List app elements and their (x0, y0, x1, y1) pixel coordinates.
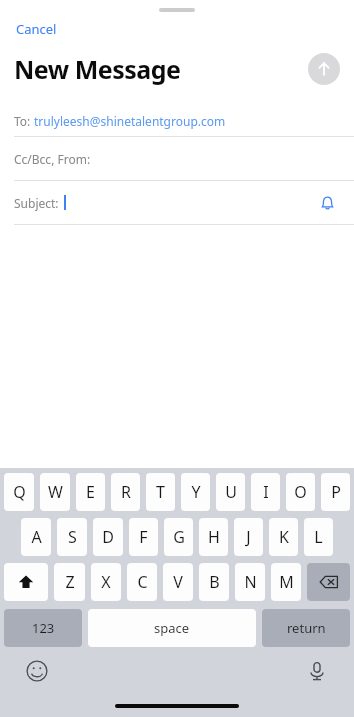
button[interactable]: R (111, 473, 140, 511)
staticText: G (173, 526, 185, 548)
button[interactable]: D (93, 518, 123, 556)
button[interactable]: Q (4, 473, 34, 511)
button[interactable]: G (164, 518, 193, 556)
button[interactable]: Shift (4, 563, 48, 601)
staticText: New Message (14, 52, 308, 86)
staticText: B (209, 571, 220, 593)
button[interactable]: F (129, 518, 158, 556)
staticText: space (154, 619, 190, 637)
button[interactable]: J (234, 518, 263, 556)
button[interactable]: space (88, 609, 256, 647)
button[interactable]: S (57, 518, 87, 556)
staticText: K (279, 526, 289, 548)
staticText: Cancel (16, 20, 57, 38)
button[interactable]: M (271, 563, 301, 601)
staticText: V (173, 571, 183, 593)
staticText: N (244, 571, 257, 593)
button[interactable]: 123 (4, 609, 82, 647)
staticText: Z (65, 571, 75, 593)
button[interactable]: U (216, 473, 245, 511)
staticText: P (331, 481, 341, 503)
staticText: To: (14, 113, 34, 129)
staticText: return (287, 619, 326, 637)
button[interactable]: W (40, 473, 70, 511)
staticText: R (121, 481, 131, 503)
button[interactable]: K (269, 518, 298, 556)
staticText: U (225, 481, 237, 503)
button[interactable]: N (235, 563, 265, 601)
button[interactable]: Notify me (314, 190, 340, 216)
button[interactable]: Backspace (307, 563, 350, 601)
button[interactable]: L (304, 518, 333, 556)
button[interactable]: Y (181, 473, 210, 511)
button[interactable]: To: (0, 106, 354, 136)
button[interactable]: Dictation (302, 656, 332, 686)
staticText: F (139, 526, 148, 548)
button[interactable]: Z (54, 563, 85, 601)
staticText: C (137, 571, 148, 593)
staticText: E (86, 481, 95, 503)
staticText: J (246, 526, 251, 548)
button[interactable]: P (321, 473, 350, 511)
button[interactable]: Subject: (0, 181, 354, 224)
staticText: Cc/Bcc, From: (14, 151, 91, 167)
staticText: Q (13, 481, 26, 503)
button[interactable]: return (262, 609, 350, 647)
button[interactable]: H (199, 518, 228, 556)
button[interactable]: Send (308, 53, 340, 85)
staticText: T (156, 481, 165, 503)
staticText: 123 (32, 619, 55, 637)
staticText: H (208, 526, 220, 548)
staticText: X (101, 571, 111, 593)
button[interactable]: Emoji (22, 656, 52, 686)
staticText: Subject: (14, 195, 59, 211)
staticText: S (68, 526, 77, 548)
button[interactable]: E (76, 473, 105, 511)
staticText: L (314, 526, 323, 548)
staticText: O (294, 481, 307, 503)
staticText: A (31, 526, 42, 548)
staticText: D (102, 526, 114, 548)
button[interactable]: X (91, 563, 121, 601)
button[interactable]: T (146, 473, 175, 511)
button[interactable]: Cc/Bcc, From: (0, 137, 354, 180)
staticText: W (48, 481, 63, 503)
staticText: M (279, 571, 294, 593)
button[interactable]: V (163, 563, 193, 601)
button[interactable]: A (21, 518, 51, 556)
staticText: I (263, 481, 269, 503)
button[interactable]: C (127, 563, 157, 601)
button[interactable]: Cancel (14, 18, 59, 40)
button[interactable]: B (199, 563, 229, 601)
staticText: trulyleesh@shinetalentgroup.com (34, 113, 226, 129)
staticText: Y (191, 481, 201, 503)
button[interactable]: I (251, 473, 280, 511)
button[interactable]: O (286, 473, 315, 511)
